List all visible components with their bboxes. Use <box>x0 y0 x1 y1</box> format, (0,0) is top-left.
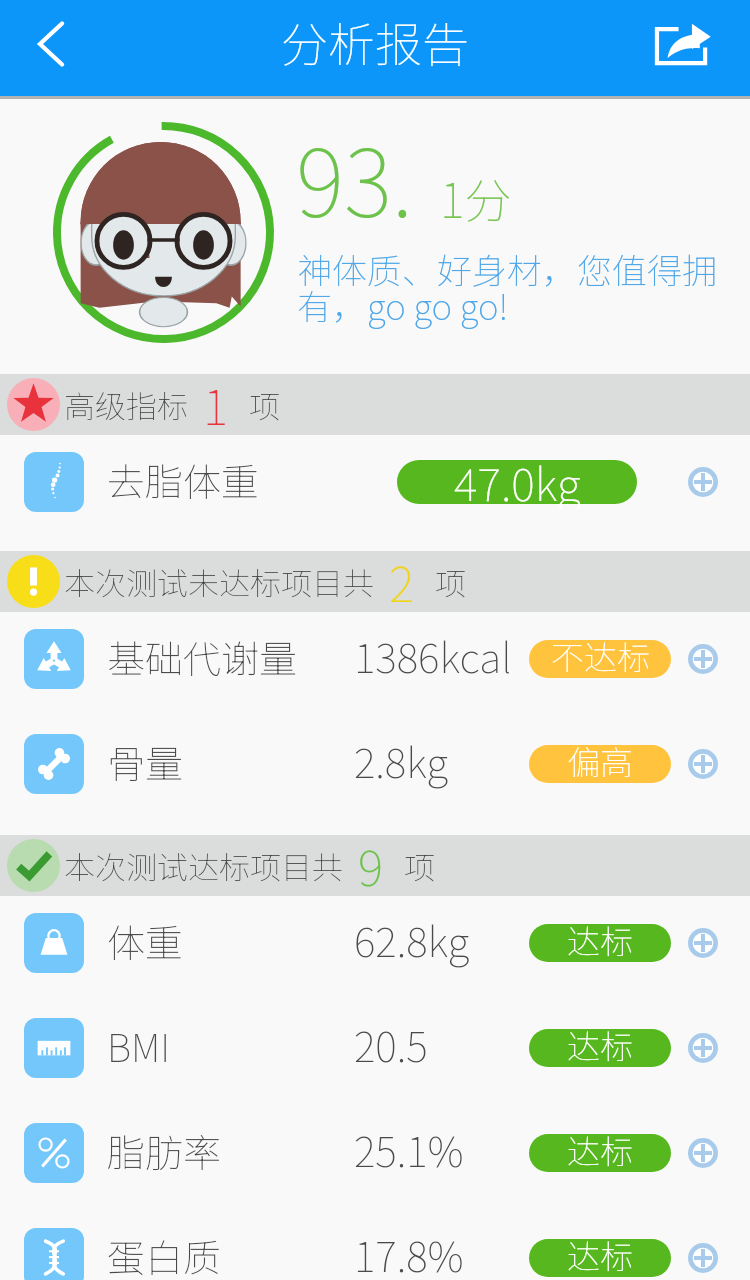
button[interactable]: 骨量 <box>0 717 750 822</box>
staticText: 9 <box>358 830 384 891</box>
staticText: 去脂体重 <box>107 452 260 507</box>
staticText: 偏高 <box>567 737 633 785</box>
button[interactable]: 偏高 <box>529 737 671 791</box>
staticText: 62.8kg <box>354 909 470 968</box>
staticText: 达标 <box>567 916 633 964</box>
staticText: 1分 <box>440 163 512 231</box>
button[interactable]: Details <box>681 1131 725 1175</box>
staticText: 本次测试达标项目共 <box>64 843 343 888</box>
staticText: 达标 <box>567 1231 633 1279</box>
staticText: 神体质、好身材，您值得拥有，go go go! <box>297 243 745 330</box>
staticText: 1 <box>203 369 229 430</box>
staticText: 达标 <box>567 1126 633 1174</box>
staticText: 达标 <box>567 1021 633 1069</box>
staticText: 2 <box>389 546 415 607</box>
staticText: 1386kcal <box>354 625 512 684</box>
staticText: BMI <box>107 1018 171 1073</box>
staticText: 17.8% <box>354 1224 464 1280</box>
button[interactable]: 脂肪率 <box>0 1106 750 1211</box>
button[interactable]: BMI <box>0 1001 750 1106</box>
staticText: 分析报告 <box>281 7 469 75</box>
button[interactable]: 本次测试达标项目共 <box>0 835 750 896</box>
button[interactable]: 达标 <box>529 1021 671 1075</box>
button[interactable]: 达标 <box>529 1231 671 1280</box>
button[interactable]: Details <box>681 921 725 965</box>
button[interactable]: 基础代谢量 <box>0 612 750 717</box>
button[interactable]: Share <box>650 0 750 96</box>
staticText: 基础代谢量 <box>107 629 298 684</box>
button[interactable]: 47.0kg <box>397 452 637 512</box>
button[interactable]: Back <box>0 0 100 96</box>
button[interactable]: 达标 <box>529 916 671 970</box>
button[interactable]: 本次测试未达标项目共 <box>0 551 750 612</box>
staticText: 项 <box>435 559 466 604</box>
button[interactable]: 蛋白质 <box>0 1211 750 1280</box>
button[interactable]: Details <box>681 460 725 504</box>
button[interactable]: Details <box>681 1236 725 1280</box>
staticText: 脂肪率 <box>107 1123 222 1178</box>
staticText: 不达标 <box>551 632 650 680</box>
button[interactable]: 高级指标 <box>0 374 750 435</box>
staticText: 项 <box>404 843 435 888</box>
button[interactable]: Details <box>681 1026 725 1070</box>
staticText: 蛋白质 <box>107 1228 222 1280</box>
button[interactable]: 体重 <box>0 896 750 1001</box>
staticText: 47.0kg <box>454 449 581 509</box>
staticText: 骨量 <box>107 734 184 789</box>
staticText: 2.8kg <box>354 730 448 789</box>
staticText: 本次测试未达标项目共 <box>64 559 374 604</box>
staticText: 93. <box>296 110 414 243</box>
staticText: 高级指标 <box>64 382 188 427</box>
button[interactable]: Details <box>681 742 725 786</box>
staticText: 20.5 <box>354 1014 428 1073</box>
button[interactable]: Details <box>681 637 725 681</box>
button[interactable]: 达标 <box>529 1126 671 1180</box>
staticText: 体重 <box>107 913 184 968</box>
button[interactable]: 去脂体重 <box>0 435 750 540</box>
button[interactable]: 不达标 <box>529 632 671 686</box>
staticText: 25.1% <box>354 1119 464 1178</box>
staticText: 项 <box>249 382 280 427</box>
